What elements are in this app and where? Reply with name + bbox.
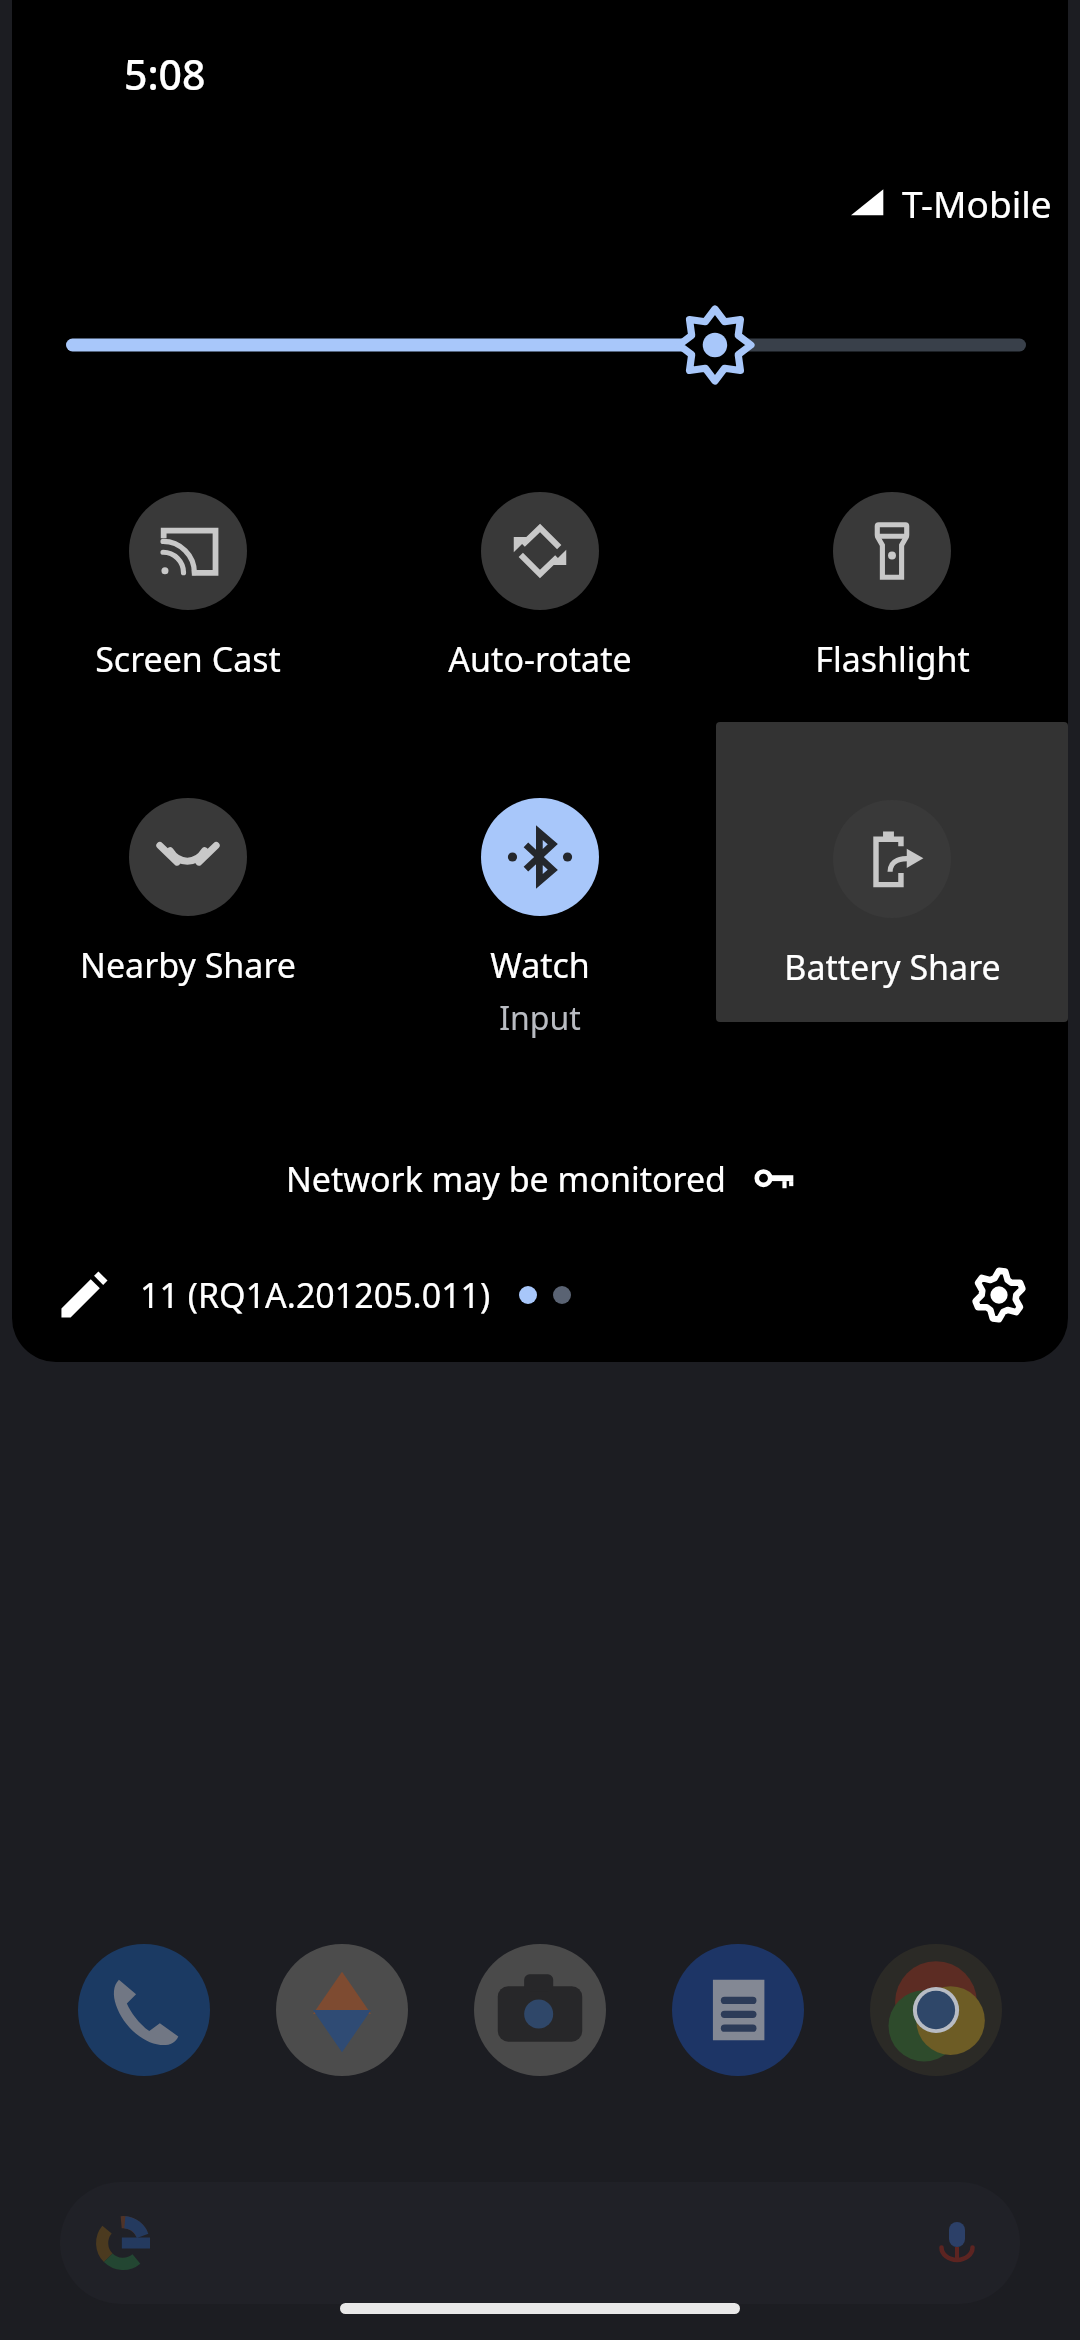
staticText: Input [499,996,581,1040]
button[interactable]: Edit tiles [42,1253,126,1337]
button[interactable]: Flashlight [716,466,1068,682]
staticText: Network may be monitored [286,1156,727,1202]
staticText: Flashlight [815,636,970,682]
button[interactable]: Auto-rotate [364,466,716,682]
button[interactable]: Watch [364,772,716,1040]
staticText: Nearby Share [80,942,296,988]
button[interactable]: Messages [672,1944,804,2076]
button[interactable]: Battery Share [716,722,1068,1022]
button[interactable]: Screen Cast [12,466,364,682]
staticText: Battery Share [784,944,1001,990]
button[interactable]: Nearby Share [12,772,364,988]
staticText: 5:08 [124,46,206,102]
button[interactable]: Network may be monitored [12,1136,1068,1222]
staticText: Screen Cast [95,636,281,682]
staticText: Watch [490,942,590,988]
staticText: 11 (RQ1A.201205.011) [140,1272,491,1318]
button[interactable]: Phone [78,1944,210,2076]
button[interactable]: Chrome [870,1944,1002,2076]
button[interactable]: Brightness [66,300,1026,390]
staticText: Auto-rotate [448,636,632,682]
button[interactable]: Camera [474,1944,606,2076]
button[interactable]: Settings [956,1252,1042,1338]
staticText: T-Mobile [902,178,1052,228]
button[interactable]: Search [60,2182,1020,2304]
button[interactable]: Photos [276,1944,408,2076]
